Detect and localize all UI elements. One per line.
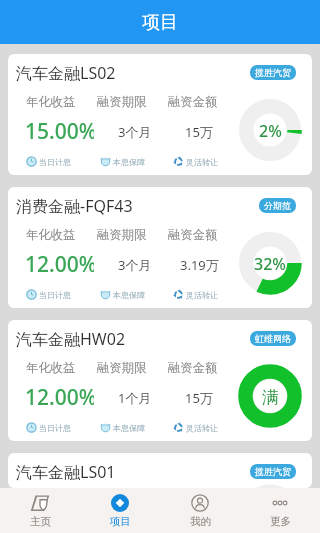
staticText: 汽车金融LS02: [16, 62, 116, 84]
button[interactable]: 汽车金融LS02: [8, 54, 312, 175]
staticText: 3.19万: [180, 256, 219, 274]
button[interactable]: 项目: [80, 488, 160, 533]
staticText: 32%: [254, 253, 286, 275]
staticText: 虹维网络: [255, 333, 291, 344]
staticText: 揽胜汽贸: [255, 466, 291, 477]
staticText: 满: [262, 387, 279, 408]
button[interactable]: 消费金融-FQF43: [8, 187, 312, 308]
staticText: 本息保障: [113, 423, 145, 433]
staticText: 当日计息: [39, 423, 71, 433]
staticText: 更多: [270, 515, 291, 528]
button[interactable]: 汽车金融LS01: [8, 453, 312, 488]
button[interactable]: 更多: [240, 488, 320, 533]
staticText: 15万: [185, 389, 213, 407]
button[interactable]: 主页: [0, 488, 80, 533]
staticText: 年化收益: [26, 94, 76, 109]
staticText: 项目: [142, 11, 178, 34]
staticText: 当日计息: [39, 290, 71, 300]
staticText: 年化收益: [26, 227, 76, 242]
staticText: 分期范: [264, 200, 291, 211]
staticText: 3个月: [118, 256, 152, 274]
staticText: 我的: [190, 515, 211, 528]
staticText: 揽胜汽贸: [255, 67, 291, 78]
staticText: 12.00%: [25, 383, 94, 412]
button[interactable]: 汽车金融HW02: [8, 320, 312, 441]
staticText: 融资金额: [168, 360, 218, 375]
staticText: 融资金额: [168, 227, 218, 242]
staticText: 汽车金融HW02: [16, 328, 126, 350]
staticText: 当日计息: [39, 157, 71, 167]
staticText: 灵活转让: [186, 290, 218, 300]
staticText: 灵活转让: [186, 423, 218, 433]
staticText: 本息保障: [113, 157, 145, 167]
staticText: 15.00%: [25, 117, 94, 146]
staticText: 主页: [30, 515, 51, 528]
staticText: 12.00%: [25, 250, 94, 279]
staticText: 汽车金融LS01: [16, 461, 116, 483]
staticText: 融资期限: [97, 94, 147, 109]
staticText: 融资期限: [97, 227, 147, 242]
staticText: 年化收益: [26, 360, 76, 375]
staticText: 15万: [185, 123, 213, 141]
staticText: 项目: [110, 515, 131, 528]
staticText: 消费金融-FQF43: [16, 195, 133, 217]
staticText: 灵活转让: [186, 157, 218, 167]
staticText: 本息保障: [113, 290, 145, 300]
staticText: 3个月: [118, 123, 152, 141]
staticText: 融资期限: [97, 360, 147, 375]
staticText: 1个月: [118, 389, 152, 407]
button[interactable]: 我的: [160, 488, 240, 533]
staticText: 融资金额: [168, 94, 218, 109]
staticText: 2%: [259, 120, 282, 142]
